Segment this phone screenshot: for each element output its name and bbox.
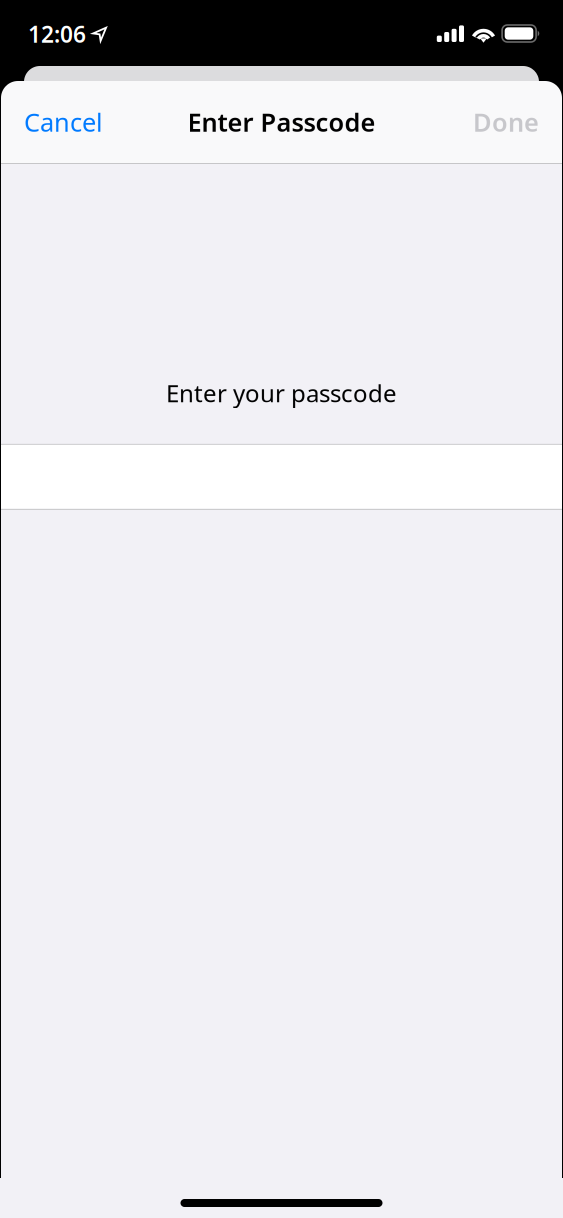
staticText: 12:06 bbox=[28, 19, 86, 49]
button[interactable]: Done bbox=[449, 81, 563, 163]
staticText: Enter Passcode bbox=[187, 105, 375, 139]
button[interactable]: Cancel bbox=[0, 81, 127, 163]
button[interactable] bbox=[0, 445, 563, 509]
staticText: Enter your passcode bbox=[166, 377, 397, 409]
staticText: Cancel bbox=[24, 105, 103, 139]
staticText: Done bbox=[473, 105, 539, 139]
